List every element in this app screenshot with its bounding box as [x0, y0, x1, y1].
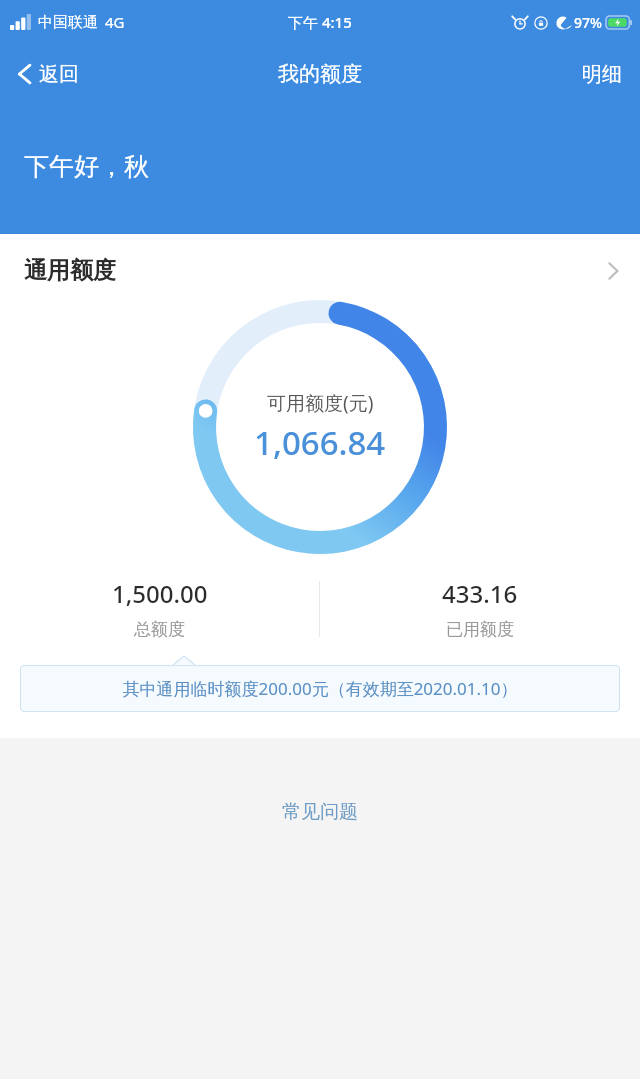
- staticText: 中国联通: [38, 13, 98, 32]
- button[interactable]: 常见问题: [262, 790, 378, 834]
- staticText: 可用额度(元): [267, 390, 374, 416]
- other: 查看通用额度详情: [607, 260, 620, 282]
- button[interactable]: 返回: [0, 53, 95, 95]
- staticText: 97%: [574, 13, 602, 32]
- staticText: 已用额度: [446, 619, 514, 640]
- staticText: 返回: [39, 62, 79, 87]
- button[interactable]: 明细: [564, 52, 640, 97]
- staticText: 总额度: [134, 619, 185, 640]
- staticText: 我的额度: [278, 61, 362, 87]
- staticText: 1,500.00: [112, 577, 208, 610]
- staticText: 常见问题: [282, 800, 358, 824]
- staticText: 通用额度: [24, 256, 116, 285]
- staticText: 433.16: [442, 577, 518, 610]
- staticText: 4G: [105, 12, 125, 32]
- staticText: 下午好，秋: [24, 151, 149, 182]
- staticText: 下午 4:15: [288, 12, 352, 32]
- button[interactable]: 通用额度: [0, 234, 640, 291]
- staticText: 1,066.84: [254, 420, 386, 465]
- staticText: 其中通用临时额度200.00元（有效期至2020.01.10）: [122, 677, 518, 700]
- staticText: 明细: [582, 62, 622, 87]
